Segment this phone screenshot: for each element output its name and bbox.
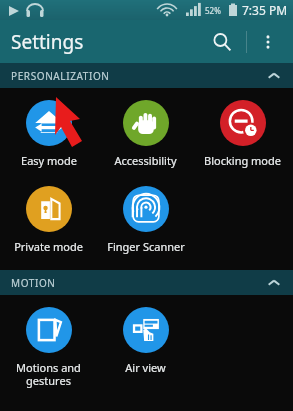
button[interactable]: Private mode [0,182,97,254]
button[interactable]: Blocking mode [194,96,291,168]
staticText: Motions and gestures [16,360,81,388]
staticText: Easy mode [21,153,77,168]
staticText: Accessibility [114,153,177,168]
button[interactable]: More options [249,23,287,61]
staticText: Blocking mode [204,153,281,168]
button[interactable]: MOTION [0,270,293,295]
button[interactable]: Motions and gestures [0,303,97,388]
button[interactable]: Air view [97,303,194,375]
staticText: 7:35 PM [242,2,288,18]
staticText: Settings [11,29,84,55]
button[interactable]: PERSONALIZATION [0,63,293,88]
button[interactable]: Search [203,23,241,61]
button[interactable]: Accessibility [97,96,194,168]
button[interactable]: Finger Scanner [97,182,194,254]
staticText: Air view [125,360,166,375]
staticText: 52% [205,5,221,16]
staticText: Finger Scanner [107,239,185,254]
staticText: PERSONALIZATION [11,69,110,83]
staticText: MOTION [11,276,56,290]
button[interactable]: Easy mode [0,96,97,168]
staticText: Private mode [14,239,83,254]
